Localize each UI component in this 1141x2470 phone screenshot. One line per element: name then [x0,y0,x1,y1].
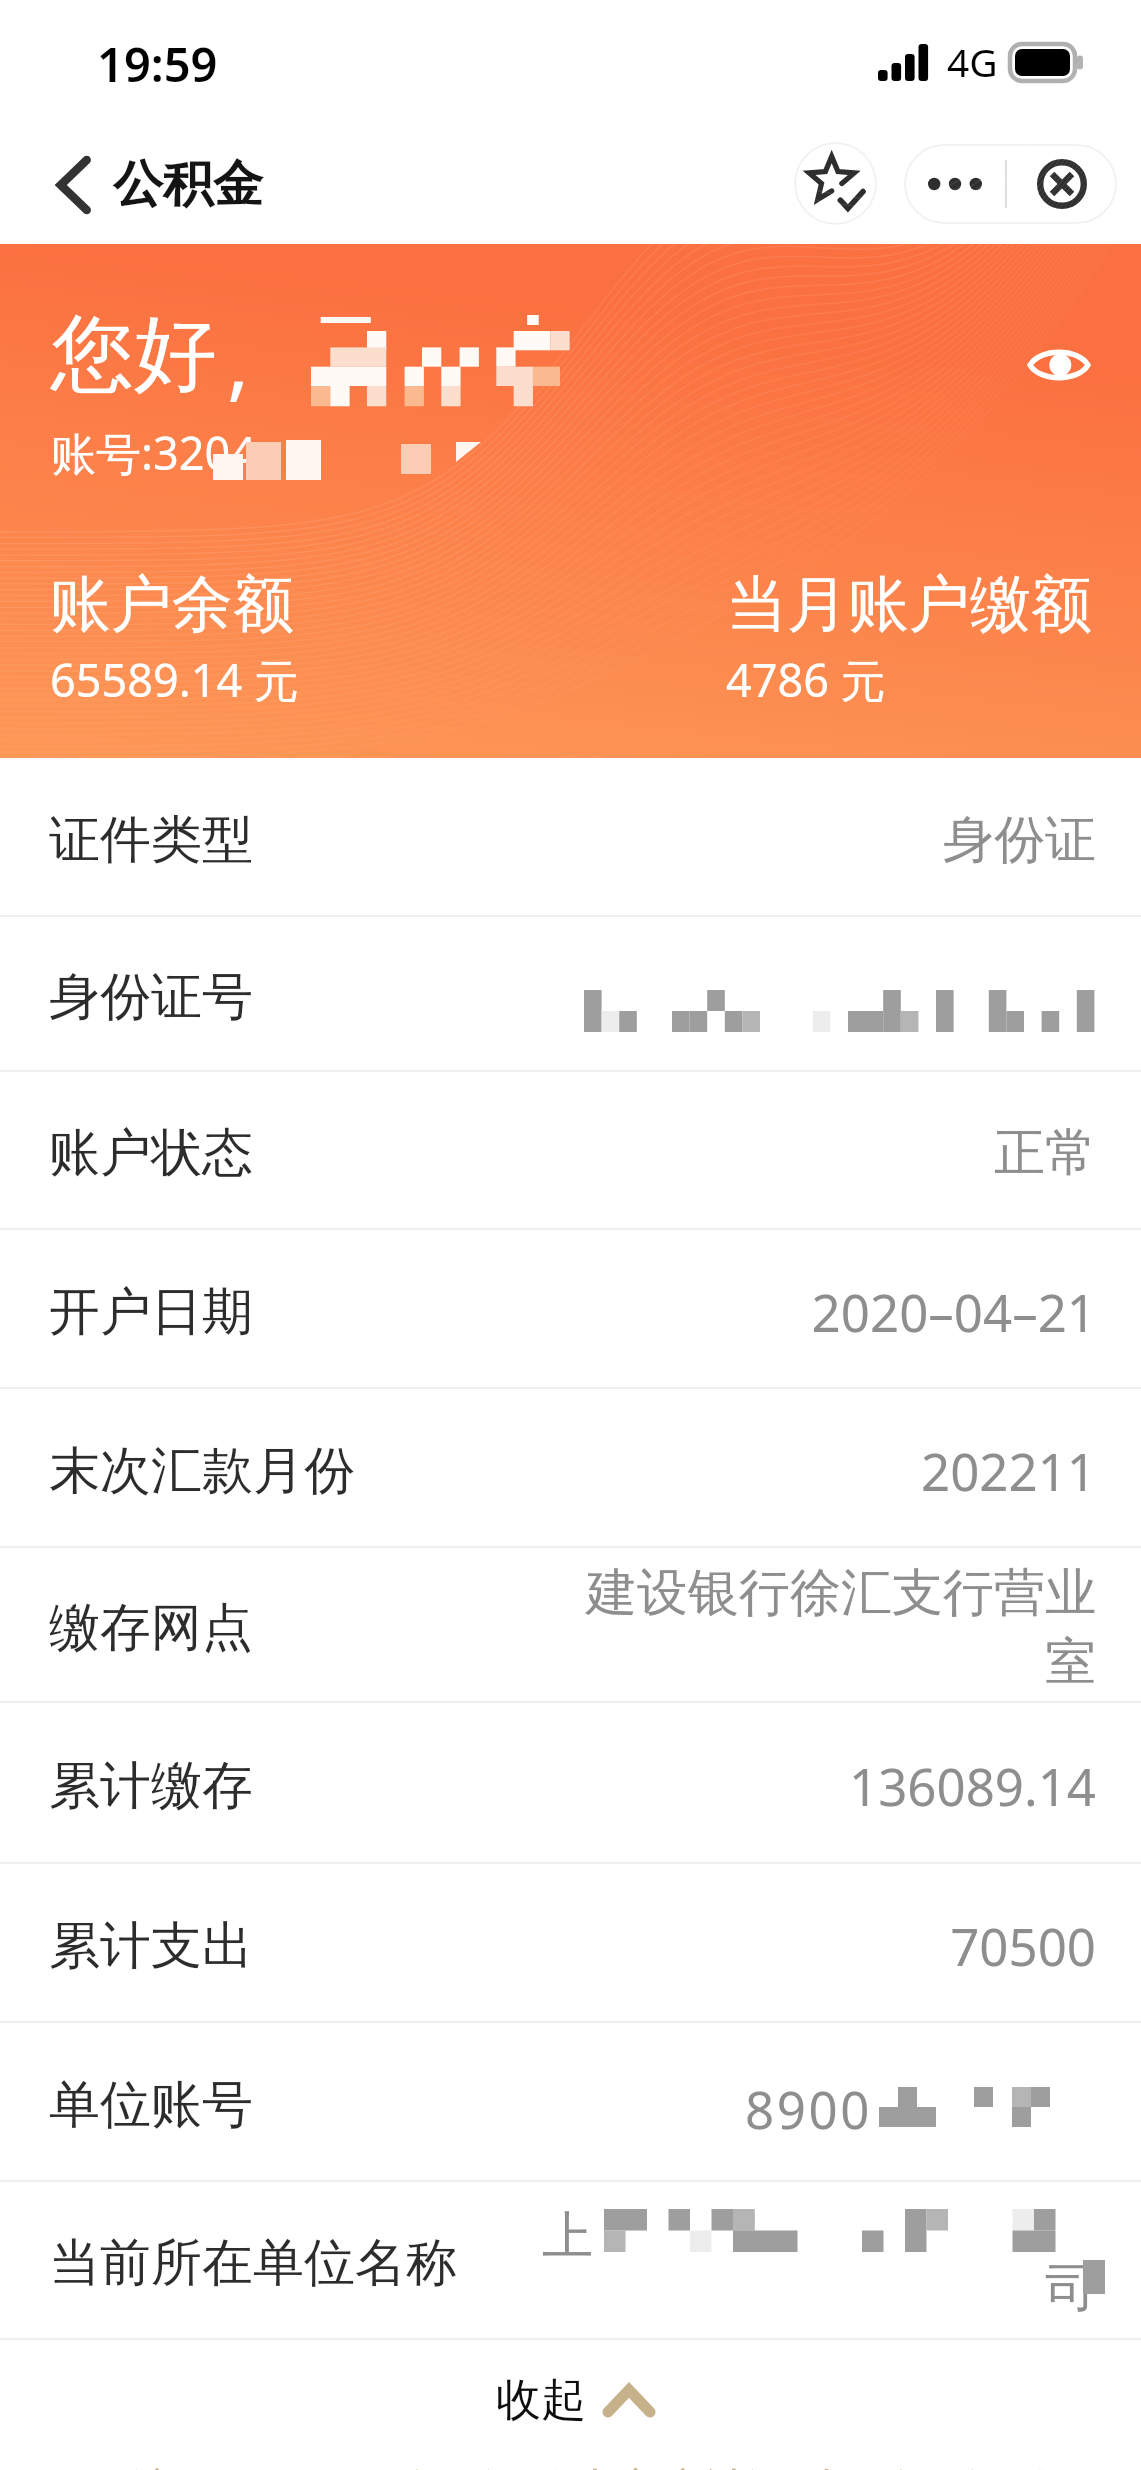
staticText: 您好 [51,302,217,407]
other: Back [55,156,91,214]
staticText: 65589.14 元 [50,649,299,710]
staticText: 累计缴存 [49,1754,253,1818]
button[interactable]: Back [55,153,263,216]
staticText: 公积金 [113,153,263,216]
staticText: 缴存网点 [49,1596,253,1660]
staticText: 2020–04–21 [536,1277,1096,1346]
button[interactable]: Close [1007,144,1117,224]
staticText: 末次汇款月份 [49,1439,355,1503]
staticText: 136089.14 [536,1751,1096,1820]
staticText: 8900 [745,2074,873,2143]
button[interactable]: 单位账号 [0,2023,1141,2180]
button[interactable]: More options [904,144,1005,224]
staticText: 当前所在单位名称 [49,2231,457,2295]
staticText: 身份证 [536,808,1096,872]
staticText: 单位账号 [49,2073,253,2137]
button[interactable]: 末次汇款月份 [0,1389,1141,1546]
staticText: 上 [542,2204,593,2268]
staticText: 账户余额 [50,566,294,643]
button[interactable]: 当前所在单位名称 [0,2182,1141,2338]
staticText: 司 [1045,2256,1096,2320]
staticText: 当月账户缴额 [726,566,1092,643]
staticText: 账号:3204 [51,422,257,483]
staticText: 202211 [536,1436,1096,1505]
staticText: 正常 [536,1121,1096,1185]
button[interactable]: 开户日期 [0,1230,1141,1387]
staticText: 开户日期 [49,1280,253,1344]
staticText: , [227,302,250,415]
staticText: 4G [947,35,998,88]
button[interactable]: 身份证号 [0,917,1141,1070]
staticText: 建设银行徐汇支行营业室 [536,1561,1096,1695]
button[interactable]: 账户状态 [0,1072,1141,1228]
staticText: 账户状态 [49,1121,253,1185]
button[interactable]: 累计缴存 [0,1703,1141,1862]
button[interactable]: Favorite [794,142,877,225]
staticText: 身份证号 [49,965,253,1029]
button[interactable]: 累计支出 [0,1864,1141,2021]
button[interactable]: 收起 [0,2340,1141,2458]
staticText: 4786 元 [726,649,886,710]
staticText: 70500 [536,1911,1096,1980]
staticText: 19:59 [97,32,218,96]
staticText: *该页面显示的身份证件为客户计证时的身份证件 [108,2458,1141,2470]
button[interactable]: 证件类型 [0,758,1141,915]
button[interactable]: Toggle balance visibility [1011,317,1107,413]
staticText: 累计支出 [49,1914,253,1978]
button[interactable]: 缴存网点 [0,1548,1141,1701]
staticText: 证件类型 [49,808,253,872]
staticText: 收起 [496,2372,586,2429]
